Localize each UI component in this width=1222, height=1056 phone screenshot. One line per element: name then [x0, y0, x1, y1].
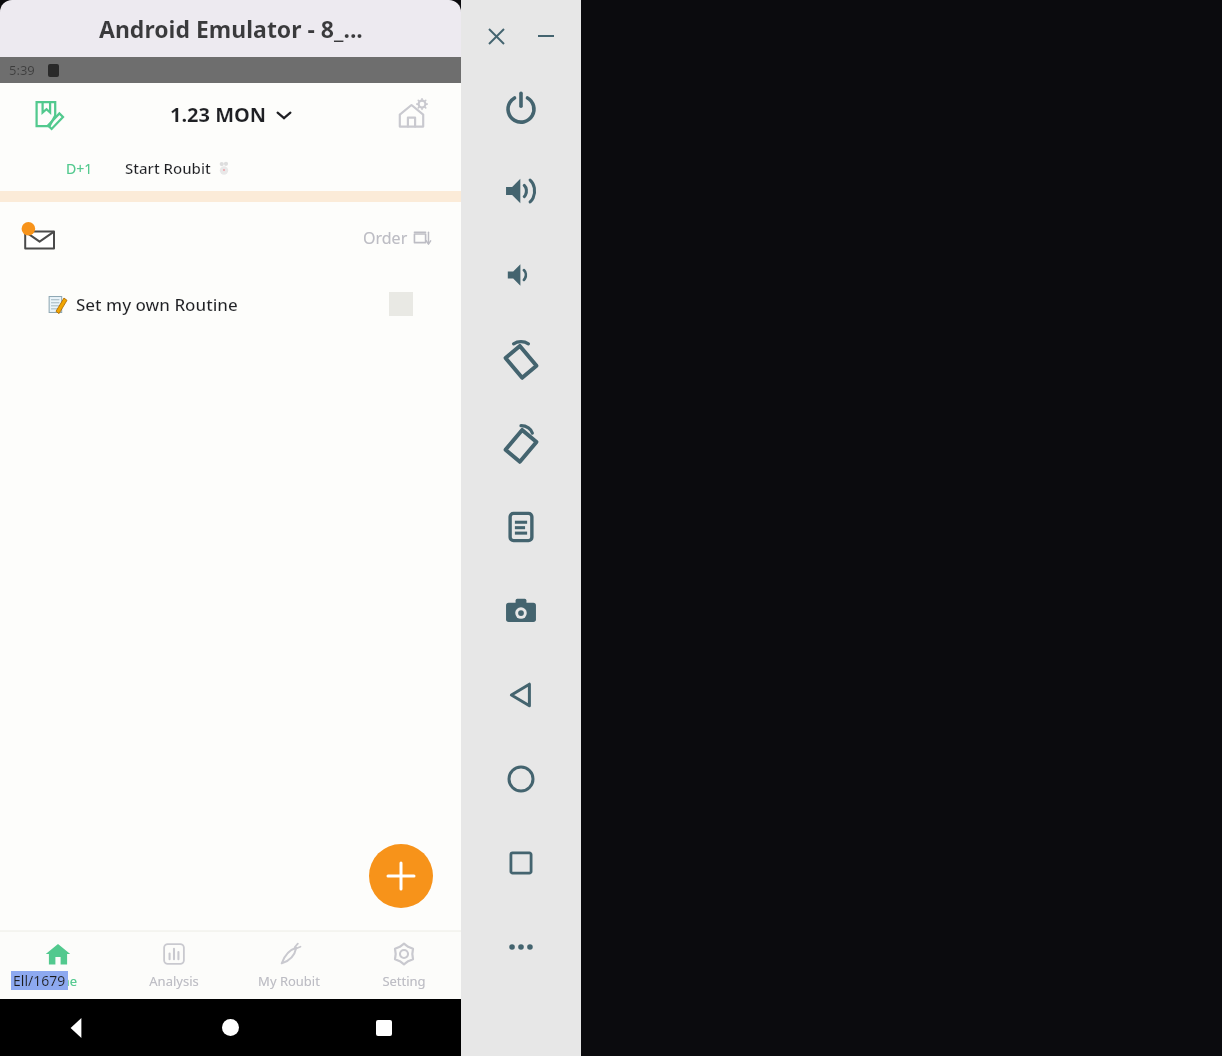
- button[interactable]: Setting: [346, 931, 461, 999]
- button[interactable]: 1.23 MON: [70, 101, 391, 128]
- staticText: 5:39: [9, 61, 35, 79]
- button[interactable]: Start Roubit: [125, 158, 231, 178]
- button[interactable]: Screenshot notes: [490, 496, 552, 558]
- button[interactable]: Power: [490, 76, 552, 138]
- button[interactable]: Back: [0, 999, 153, 1056]
- button[interactable]: Add routine: [369, 844, 433, 908]
- button[interactable]: Home: [0, 931, 116, 999]
- staticText: Analysis: [149, 972, 199, 990]
- button[interactable]: Rotate right: [490, 412, 552, 474]
- button[interactable]: Overview: [490, 832, 552, 894]
- staticText: Order: [363, 227, 408, 249]
- button[interactable]: Back: [490, 664, 552, 726]
- button[interactable]: Analysis: [116, 931, 231, 999]
- button[interactable]: Minimize: [528, 18, 564, 54]
- button[interactable]: Edit journal: [26, 92, 70, 136]
- button[interactable]: Home: [490, 748, 552, 810]
- button[interactable]: Rotate left: [490, 328, 552, 390]
- button[interactable]: Volume up: [490, 160, 552, 222]
- button[interactable]: Set my own Routine: [0, 274, 461, 334]
- staticText: Start Roubit: [125, 158, 211, 178]
- staticText: Home: [40, 972, 77, 990]
- button[interactable]: Order: [363, 227, 431, 249]
- button[interactable]: Home: [153, 999, 307, 1056]
- button[interactable]: Volume down: [490, 244, 552, 306]
- staticText: Android Emulator - 8_...: [99, 13, 363, 44]
- staticText: D+1: [66, 159, 93, 178]
- staticText: Ell/1679: [13, 971, 66, 990]
- button[interactable]: Home settings: [391, 92, 435, 136]
- staticText: My Roubit: [258, 972, 320, 990]
- button[interactable]: Recents: [307, 999, 461, 1056]
- staticText: 1.23 MON: [170, 101, 267, 128]
- button[interactable]: Close: [478, 18, 514, 54]
- button[interactable]: Messages, new: [14, 214, 62, 262]
- staticText: Setting: [382, 972, 426, 990]
- button[interactable]: Camera: [490, 580, 552, 642]
- staticText: Set my own Routine: [76, 293, 238, 316]
- button[interactable]: More: [490, 916, 552, 978]
- button[interactable]: My Roubit: [231, 931, 346, 999]
